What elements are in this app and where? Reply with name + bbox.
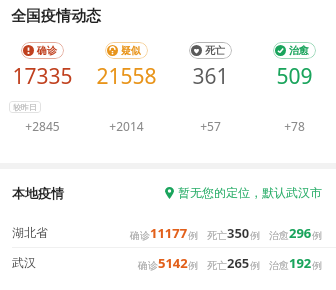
staticText: 265: [227, 254, 250, 272]
staticText: 全国疫情动态: [11, 7, 101, 26]
staticText: +2014: [109, 118, 144, 134]
staticText: 例: [312, 259, 322, 272]
staticText: 死亡: [207, 259, 227, 272]
staticText: 确诊: [37, 44, 57, 57]
button[interactable]: Location: [163, 183, 324, 202]
staticText: 例: [188, 259, 198, 272]
button[interactable]: 疑似: [105, 42, 148, 59]
staticText: +2845: [25, 118, 60, 134]
button[interactable]: 武汉: [0, 248, 336, 277]
staticText: 17335: [12, 62, 73, 91]
staticText: 湖北省: [12, 225, 48, 240]
staticText: 509: [276, 62, 313, 91]
staticText: +57: [200, 118, 221, 134]
button[interactable]: 死亡: [189, 42, 232, 59]
staticText: 本地疫情: [12, 185, 64, 201]
staticText: 296: [289, 224, 312, 242]
staticText: 确诊: [138, 259, 158, 272]
staticText: 5142: [158, 254, 188, 272]
staticText: 死亡: [205, 44, 225, 57]
staticText: 21558: [96, 62, 157, 91]
staticText: 例: [312, 229, 322, 242]
staticText: 确诊: [130, 229, 150, 242]
staticText: 暂无您的定位，默认武汉市: [178, 185, 322, 200]
staticText: 350: [227, 224, 250, 242]
staticText: 11177: [150, 224, 188, 242]
staticText: 治愈: [269, 229, 289, 242]
staticText: 疑似: [121, 44, 141, 57]
staticText: 192: [289, 254, 312, 272]
button[interactable]: 确诊: [21, 42, 64, 59]
staticText: 治愈: [269, 259, 289, 272]
other: Location: [165, 187, 174, 199]
staticText: 武汉: [12, 255, 36, 270]
staticText: 死亡: [207, 229, 227, 242]
staticText: 例: [250, 229, 260, 242]
staticText: 例: [188, 229, 198, 242]
staticText: +78: [284, 118, 305, 134]
staticText: 较昨日: [13, 102, 37, 112]
staticText: 361: [192, 62, 229, 91]
staticText: 例: [250, 259, 260, 272]
staticText: 治愈: [289, 44, 309, 57]
button[interactable]: 治愈: [273, 42, 316, 59]
button[interactable]: 湖北省: [0, 218, 336, 247]
